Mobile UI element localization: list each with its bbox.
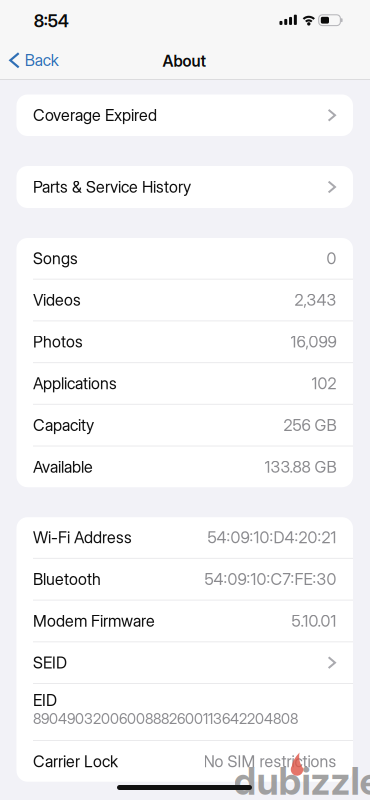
staticText: 0: [326, 249, 336, 268]
staticText: 5.10.01: [291, 611, 336, 631]
staticText: 54:09:10:C7:FE:30: [204, 570, 336, 589]
staticText: Available: [33, 457, 93, 477]
staticText: Photos: [33, 332, 83, 351]
staticText: About: [162, 52, 206, 71]
staticText: No SIM restrictions: [203, 752, 336, 771]
staticText: EID: [33, 690, 57, 710]
staticText: 2,343: [294, 290, 336, 310]
button[interactable]: SEID: [16, 642, 353, 683]
button[interactable]: Parts & Service History: [16, 166, 353, 208]
staticText: 54:09:10:D4:20:21: [207, 528, 336, 547]
staticText: Videos: [33, 290, 81, 310]
staticText: Bluetooth: [33, 570, 101, 589]
staticText: Back: [25, 51, 59, 70]
staticText: 133.88 GB: [264, 457, 336, 477]
staticText: SEID: [33, 653, 67, 672]
staticText: Carrier Lock: [33, 752, 118, 771]
button[interactable]: Back: [10, 51, 59, 70]
staticText: Wi-Fi Address: [33, 528, 132, 547]
staticText: 16,099: [290, 332, 336, 351]
staticText: Songs: [33, 249, 78, 268]
staticText: 89049032006008882600113642204808: [33, 710, 298, 727]
staticText: 102: [311, 374, 336, 393]
staticText: Modem Firmware: [33, 611, 155, 631]
staticText: 8:54: [34, 10, 69, 31]
staticText: 256 GB: [283, 415, 336, 435]
staticText: Parts & Service History: [33, 177, 191, 197]
staticText: Capacity: [33, 415, 94, 435]
staticText: Applications: [33, 374, 117, 393]
staticText: Coverage Expired: [33, 106, 157, 125]
staticText: dubizzle: [233, 758, 370, 800]
button[interactable]: Coverage Expired: [16, 94, 353, 136]
